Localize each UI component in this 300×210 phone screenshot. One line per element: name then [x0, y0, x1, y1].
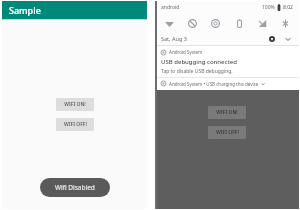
staticText: WIFI ON!: [216, 109, 238, 116]
button[interactable]: Settings: [267, 34, 277, 44]
button[interactable]: WIFI OFF!: [208, 126, 246, 139]
staticText: Sample: [9, 4, 41, 16]
button[interactable]: Android System: [155, 46, 299, 77]
staticText: Android System: [169, 49, 203, 55]
button[interactable]: Mobile data: [253, 14, 271, 32]
button[interactable]: WIFI ON!: [56, 98, 94, 111]
button[interactable]: WIFI ON!: [208, 106, 246, 119]
button[interactable]: Android System • USB charging this devic…: [155, 78, 299, 89]
staticText: WIFI ON!: [64, 101, 86, 108]
staticText: WIFI OFF!: [64, 121, 87, 128]
staticText: Sat, Aug 3: [161, 35, 187, 42]
button[interactable]: Bluetooth: [276, 14, 294, 32]
staticText: 100%: [262, 4, 275, 11]
staticText: Android System • USB charging this devic…: [169, 81, 259, 87]
button[interactable]: Auto rotate: [206, 14, 224, 32]
button[interactable]: WIFI OFF!: [56, 118, 94, 131]
button[interactable]: Do not disturb: [183, 14, 201, 32]
button[interactable]: Expand: [283, 34, 293, 44]
staticText: WIFI OFF!: [216, 129, 239, 136]
staticText: android: [161, 4, 180, 11]
staticText: Wifi Disabled: [55, 183, 95, 192]
staticText: Tap to disable USB debugging.: [161, 68, 233, 74]
button[interactable]: Wifi Disabled: [40, 178, 110, 197]
staticText: 8:02: [283, 4, 293, 11]
button[interactable]: Wi-Fi: [160, 14, 178, 32]
button[interactable]: Battery saver: [230, 14, 248, 32]
staticText: USB debugging connected: [161, 58, 237, 66]
